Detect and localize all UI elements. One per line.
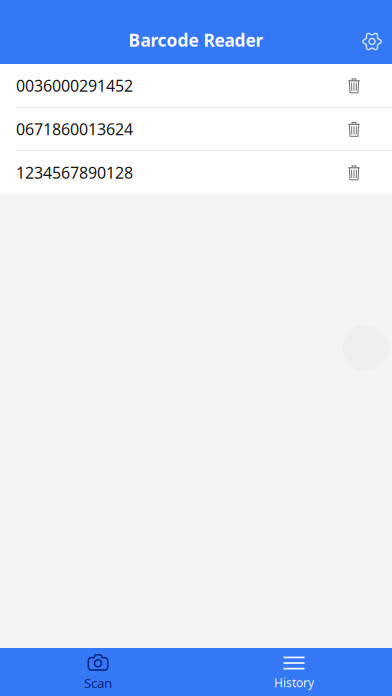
button[interactable]: Settings bbox=[350, 19, 392, 63]
staticText: Barcode Reader bbox=[128, 28, 263, 51]
button[interactable]: 0036000291452 bbox=[0, 64, 392, 107]
button[interactable]: Delete 1234567890128 bbox=[332, 151, 376, 193]
button[interactable]: Scan bbox=[0, 648, 196, 696]
button[interactable]: Delete 0671860013624 bbox=[332, 108, 376, 150]
button[interactable]: 0671860013624 bbox=[0, 108, 392, 150]
staticText: 0036000291452 bbox=[16, 75, 133, 96]
button[interactable]: 1234567890128 bbox=[0, 151, 392, 194]
staticText: History bbox=[274, 674, 314, 690]
staticText: 1234567890128 bbox=[16, 162, 133, 183]
staticText: Scan bbox=[84, 674, 112, 692]
staticText: 0671860013624 bbox=[16, 118, 133, 140]
button[interactable]: Delete 0036000291452 bbox=[332, 64, 376, 106]
button[interactable]: History bbox=[196, 648, 392, 696]
